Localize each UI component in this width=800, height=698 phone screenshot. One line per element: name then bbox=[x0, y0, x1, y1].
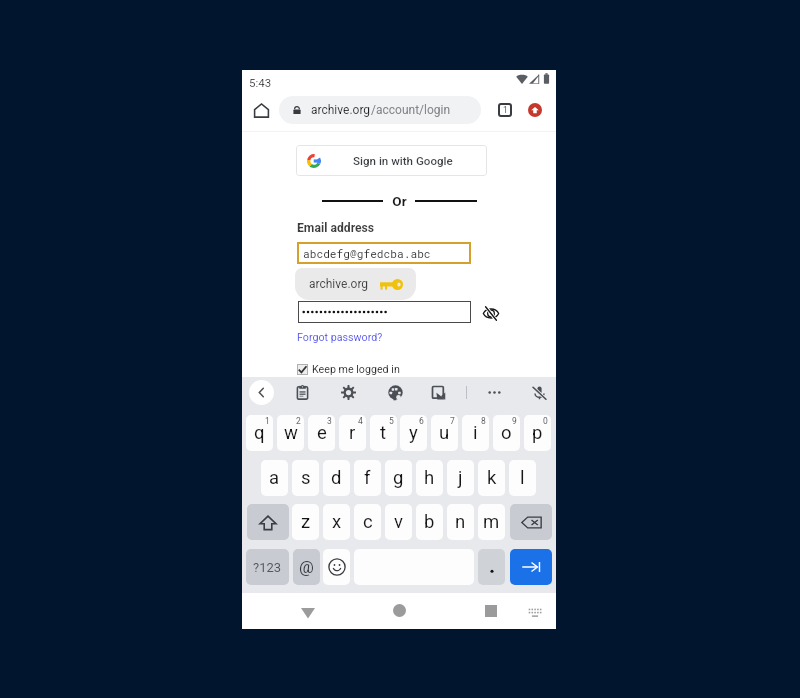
staticText: ?123 bbox=[253, 560, 282, 575]
button[interactable]: Emoji bbox=[323, 549, 350, 585]
button[interactable]: More options bbox=[482, 380, 506, 404]
button[interactable]: Show password bbox=[479, 302, 502, 325]
staticText: e bbox=[317, 422, 327, 444]
button[interactable]: Settings bbox=[336, 380, 360, 404]
staticText: c bbox=[363, 511, 373, 533]
staticText: i bbox=[473, 422, 478, 444]
button[interactable]: t bbox=[370, 415, 397, 451]
button[interactable]: r bbox=[339, 415, 366, 451]
button[interactable]: Hide keyboard bbox=[294, 599, 321, 626]
button[interactable]: a bbox=[261, 460, 288, 496]
button[interactable]: @ bbox=[293, 549, 320, 585]
button[interactable]: Recent apps bbox=[477, 597, 504, 624]
staticText: Sign in with Google bbox=[353, 154, 453, 168]
button[interactable]: k bbox=[478, 460, 505, 496]
staticText: s bbox=[301, 467, 311, 489]
button[interactable]: Tabs bbox=[494, 99, 516, 121]
staticText: b bbox=[424, 511, 435, 533]
button[interactable]: m bbox=[478, 504, 505, 540]
button[interactable]: Home bbox=[250, 99, 272, 121]
staticText: u bbox=[439, 422, 450, 444]
button[interactable]: archive.org bbox=[295, 268, 416, 300]
button[interactable]: h bbox=[416, 460, 443, 496]
button[interactable]: x bbox=[323, 504, 350, 540]
button[interactable]: Stickers bbox=[426, 380, 450, 404]
staticText: 5:43 bbox=[249, 76, 272, 89]
button[interactable]: d bbox=[323, 460, 350, 496]
staticText: archive.org bbox=[309, 277, 369, 291]
button[interactable]: Voice input bbox=[527, 380, 551, 404]
staticText: archive.org bbox=[311, 103, 371, 117]
staticText: t bbox=[380, 422, 387, 444]
staticText: m bbox=[483, 511, 500, 533]
button[interactable]: Shift bbox=[247, 504, 289, 540]
staticText: f bbox=[364, 467, 371, 489]
staticText: p bbox=[532, 422, 543, 444]
button[interactable]: e bbox=[308, 415, 335, 451]
staticText: g bbox=[393, 467, 404, 489]
staticText: 2 bbox=[296, 416, 301, 426]
staticText: j bbox=[458, 467, 463, 489]
button[interactable]: n bbox=[447, 504, 474, 540]
button[interactable]: q bbox=[246, 415, 273, 451]
button[interactable]: Next bbox=[510, 549, 552, 585]
button[interactable]: l bbox=[509, 460, 536, 496]
staticText: d bbox=[331, 467, 342, 489]
button[interactable]: archive.org bbox=[279, 96, 481, 124]
staticText: 1 bbox=[503, 105, 508, 115]
staticText: n bbox=[455, 511, 466, 533]
staticText: 3 bbox=[327, 416, 332, 426]
button[interactable]: b bbox=[416, 504, 443, 540]
button[interactable]: y bbox=[400, 415, 427, 451]
button[interactable]: Clipboard bbox=[290, 380, 314, 404]
staticText: q bbox=[254, 422, 265, 444]
staticText: h bbox=[424, 467, 435, 489]
button[interactable]: Backspace bbox=[510, 504, 552, 540]
button[interactable]: Themes bbox=[383, 380, 407, 404]
staticText: 0 bbox=[543, 416, 548, 426]
button[interactable] bbox=[298, 301, 471, 323]
staticText: l bbox=[520, 467, 525, 489]
staticText: v bbox=[394, 511, 403, 533]
button[interactable]: g bbox=[385, 460, 412, 496]
staticText: 1 bbox=[265, 416, 270, 426]
staticText: 4 bbox=[358, 416, 363, 426]
button[interactable]: w bbox=[277, 415, 304, 451]
button[interactable]: ?123 bbox=[246, 549, 289, 585]
staticText: x bbox=[332, 511, 342, 533]
staticText: z bbox=[301, 511, 311, 533]
button[interactable]: Sign in with Google bbox=[296, 145, 487, 176]
staticText: 8 bbox=[481, 416, 486, 426]
staticText: 6 bbox=[419, 416, 424, 426]
staticText: @ bbox=[299, 558, 314, 577]
button[interactable]: i bbox=[462, 415, 489, 451]
button[interactable]: Back bbox=[249, 380, 274, 405]
button[interactable]: Keep me logged in bbox=[297, 363, 400, 376]
button[interactable]: s bbox=[292, 460, 319, 496]
button[interactable]: o bbox=[493, 415, 520, 451]
staticText: o bbox=[501, 422, 512, 444]
button[interactable]: f bbox=[354, 460, 381, 496]
staticText: r bbox=[349, 422, 356, 444]
staticText: k bbox=[487, 467, 497, 489]
button[interactable]: Switch keyboard bbox=[523, 601, 546, 624]
button[interactable]: u bbox=[431, 415, 458, 451]
button[interactable]: v bbox=[385, 504, 412, 540]
button[interactable]: j bbox=[447, 460, 474, 496]
button[interactable]: Update Chrome bbox=[524, 99, 546, 121]
staticText: /account/login bbox=[371, 103, 451, 117]
button[interactable]: c bbox=[354, 504, 381, 540]
button[interactable]: p bbox=[524, 415, 551, 451]
button[interactable]: Forgot password? bbox=[297, 331, 383, 344]
staticText: 7 bbox=[450, 416, 455, 426]
staticText: y bbox=[409, 422, 418, 444]
staticText: abcdefg@gfedcba.abc bbox=[303, 246, 431, 261]
button[interactable]: z bbox=[292, 504, 319, 540]
button[interactable]: Home bbox=[386, 597, 413, 624]
button[interactable] bbox=[478, 549, 505, 585]
staticText: Email address bbox=[297, 221, 375, 235]
button[interactable]: abcdefg@gfedcba.abc bbox=[297, 242, 471, 264]
staticText: a bbox=[269, 467, 280, 489]
staticText: w bbox=[284, 422, 298, 444]
